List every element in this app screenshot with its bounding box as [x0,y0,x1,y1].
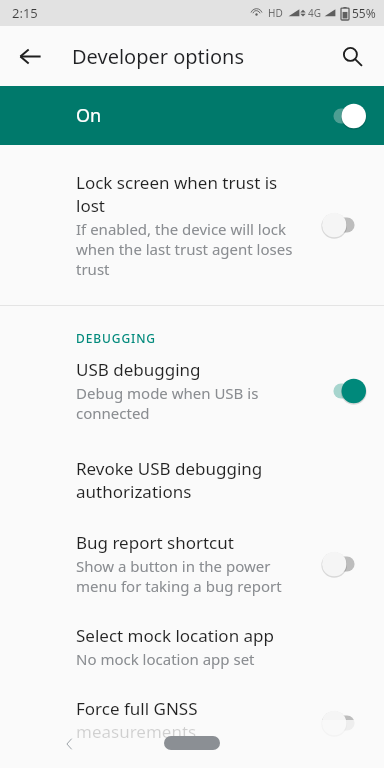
staticText: 55% [352,5,376,21]
button[interactable]: Force full GNSS measurements [0,691,384,768]
button[interactable]: Bug report shortcut [0,525,384,618]
button[interactable]: Revoke USB debugging authorizations [0,443,384,525]
staticText: Lock screen when trust is lost [76,171,308,217]
staticText: Revoke USB debugging authorizations [76,457,360,503]
button[interactable]: On [0,86,384,145]
button[interactable]: Select mock location app [0,618,384,691]
staticText: 2:15 [12,4,38,22]
button[interactable]: On [322,378,366,404]
button[interactable]: Back [52,726,88,762]
staticText: DEBUGGING [76,330,156,346]
button[interactable]: Off [322,551,366,577]
button[interactable]: Home [164,736,220,750]
staticText: On [76,103,102,128]
button[interactable]: Search [328,32,376,80]
staticText: Debug mode when USB is connected [76,383,308,423]
staticText: Force full GNSS measurements [76,697,308,743]
staticText: If enabled, the device will lock when th… [76,219,308,279]
button[interactable]: On [322,103,366,129]
staticText: Track all GNSS constellations and freque… [76,745,308,748]
staticText: 4G [308,6,321,20]
staticText: No mock location app set [76,649,255,669]
button[interactable]: USB debugging [0,354,384,443]
staticText: USB debugging [76,358,201,381]
button[interactable]: Lock screen when trust is lost [0,145,384,305]
button[interactable]: Back [6,32,54,80]
staticText: Bug report shortcut [76,531,234,554]
staticText: Select mock location app [76,624,274,647]
button[interactable]: Off [322,710,366,736]
staticText: HD [268,6,283,20]
staticText: Show a button in the power menu for taki… [76,556,308,596]
staticText: Developer options [72,43,245,70]
button[interactable]: Off [322,212,366,238]
